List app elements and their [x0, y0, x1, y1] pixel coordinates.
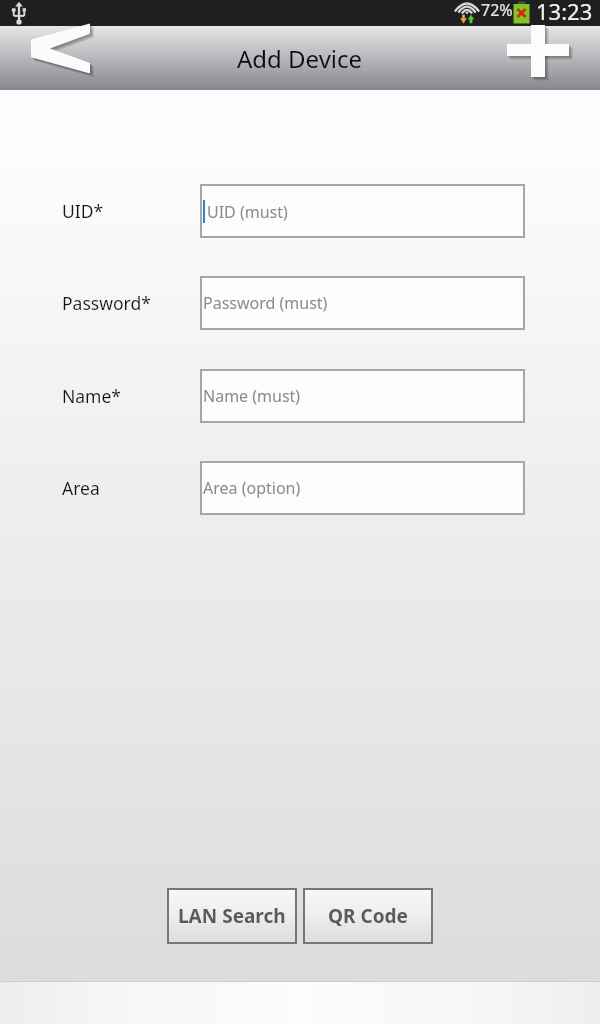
staticText: Password (must) [203, 292, 328, 314]
button[interactable]: Add [500, 26, 600, 90]
staticText: 13:23 [536, 0, 593, 22]
staticText: UID (must) [207, 201, 288, 223]
button[interactable]: LAN Search [167, 888, 297, 944]
staticText: Name* [62, 384, 121, 408]
button[interactable]: Back [0, 26, 100, 90]
staticText: Area (option) [203, 477, 301, 499]
staticText: Name (must) [203, 385, 301, 407]
staticText: Add Device [237, 42, 363, 75]
button[interactable]: QR Code [303, 888, 433, 944]
staticText: 72% [481, 0, 513, 21]
button[interactable]: Password (must) [200, 276, 525, 330]
button[interactable]: Name (must) [200, 369, 525, 423]
staticText: Password* [62, 291, 151, 315]
staticText: Area [62, 476, 100, 500]
button[interactable]: UID (must) [200, 184, 525, 238]
button[interactable]: Area (option) [200, 461, 525, 515]
staticText: QR Code [328, 903, 408, 929]
staticText: UID* [62, 199, 104, 223]
staticText: LAN Search [178, 903, 286, 929]
